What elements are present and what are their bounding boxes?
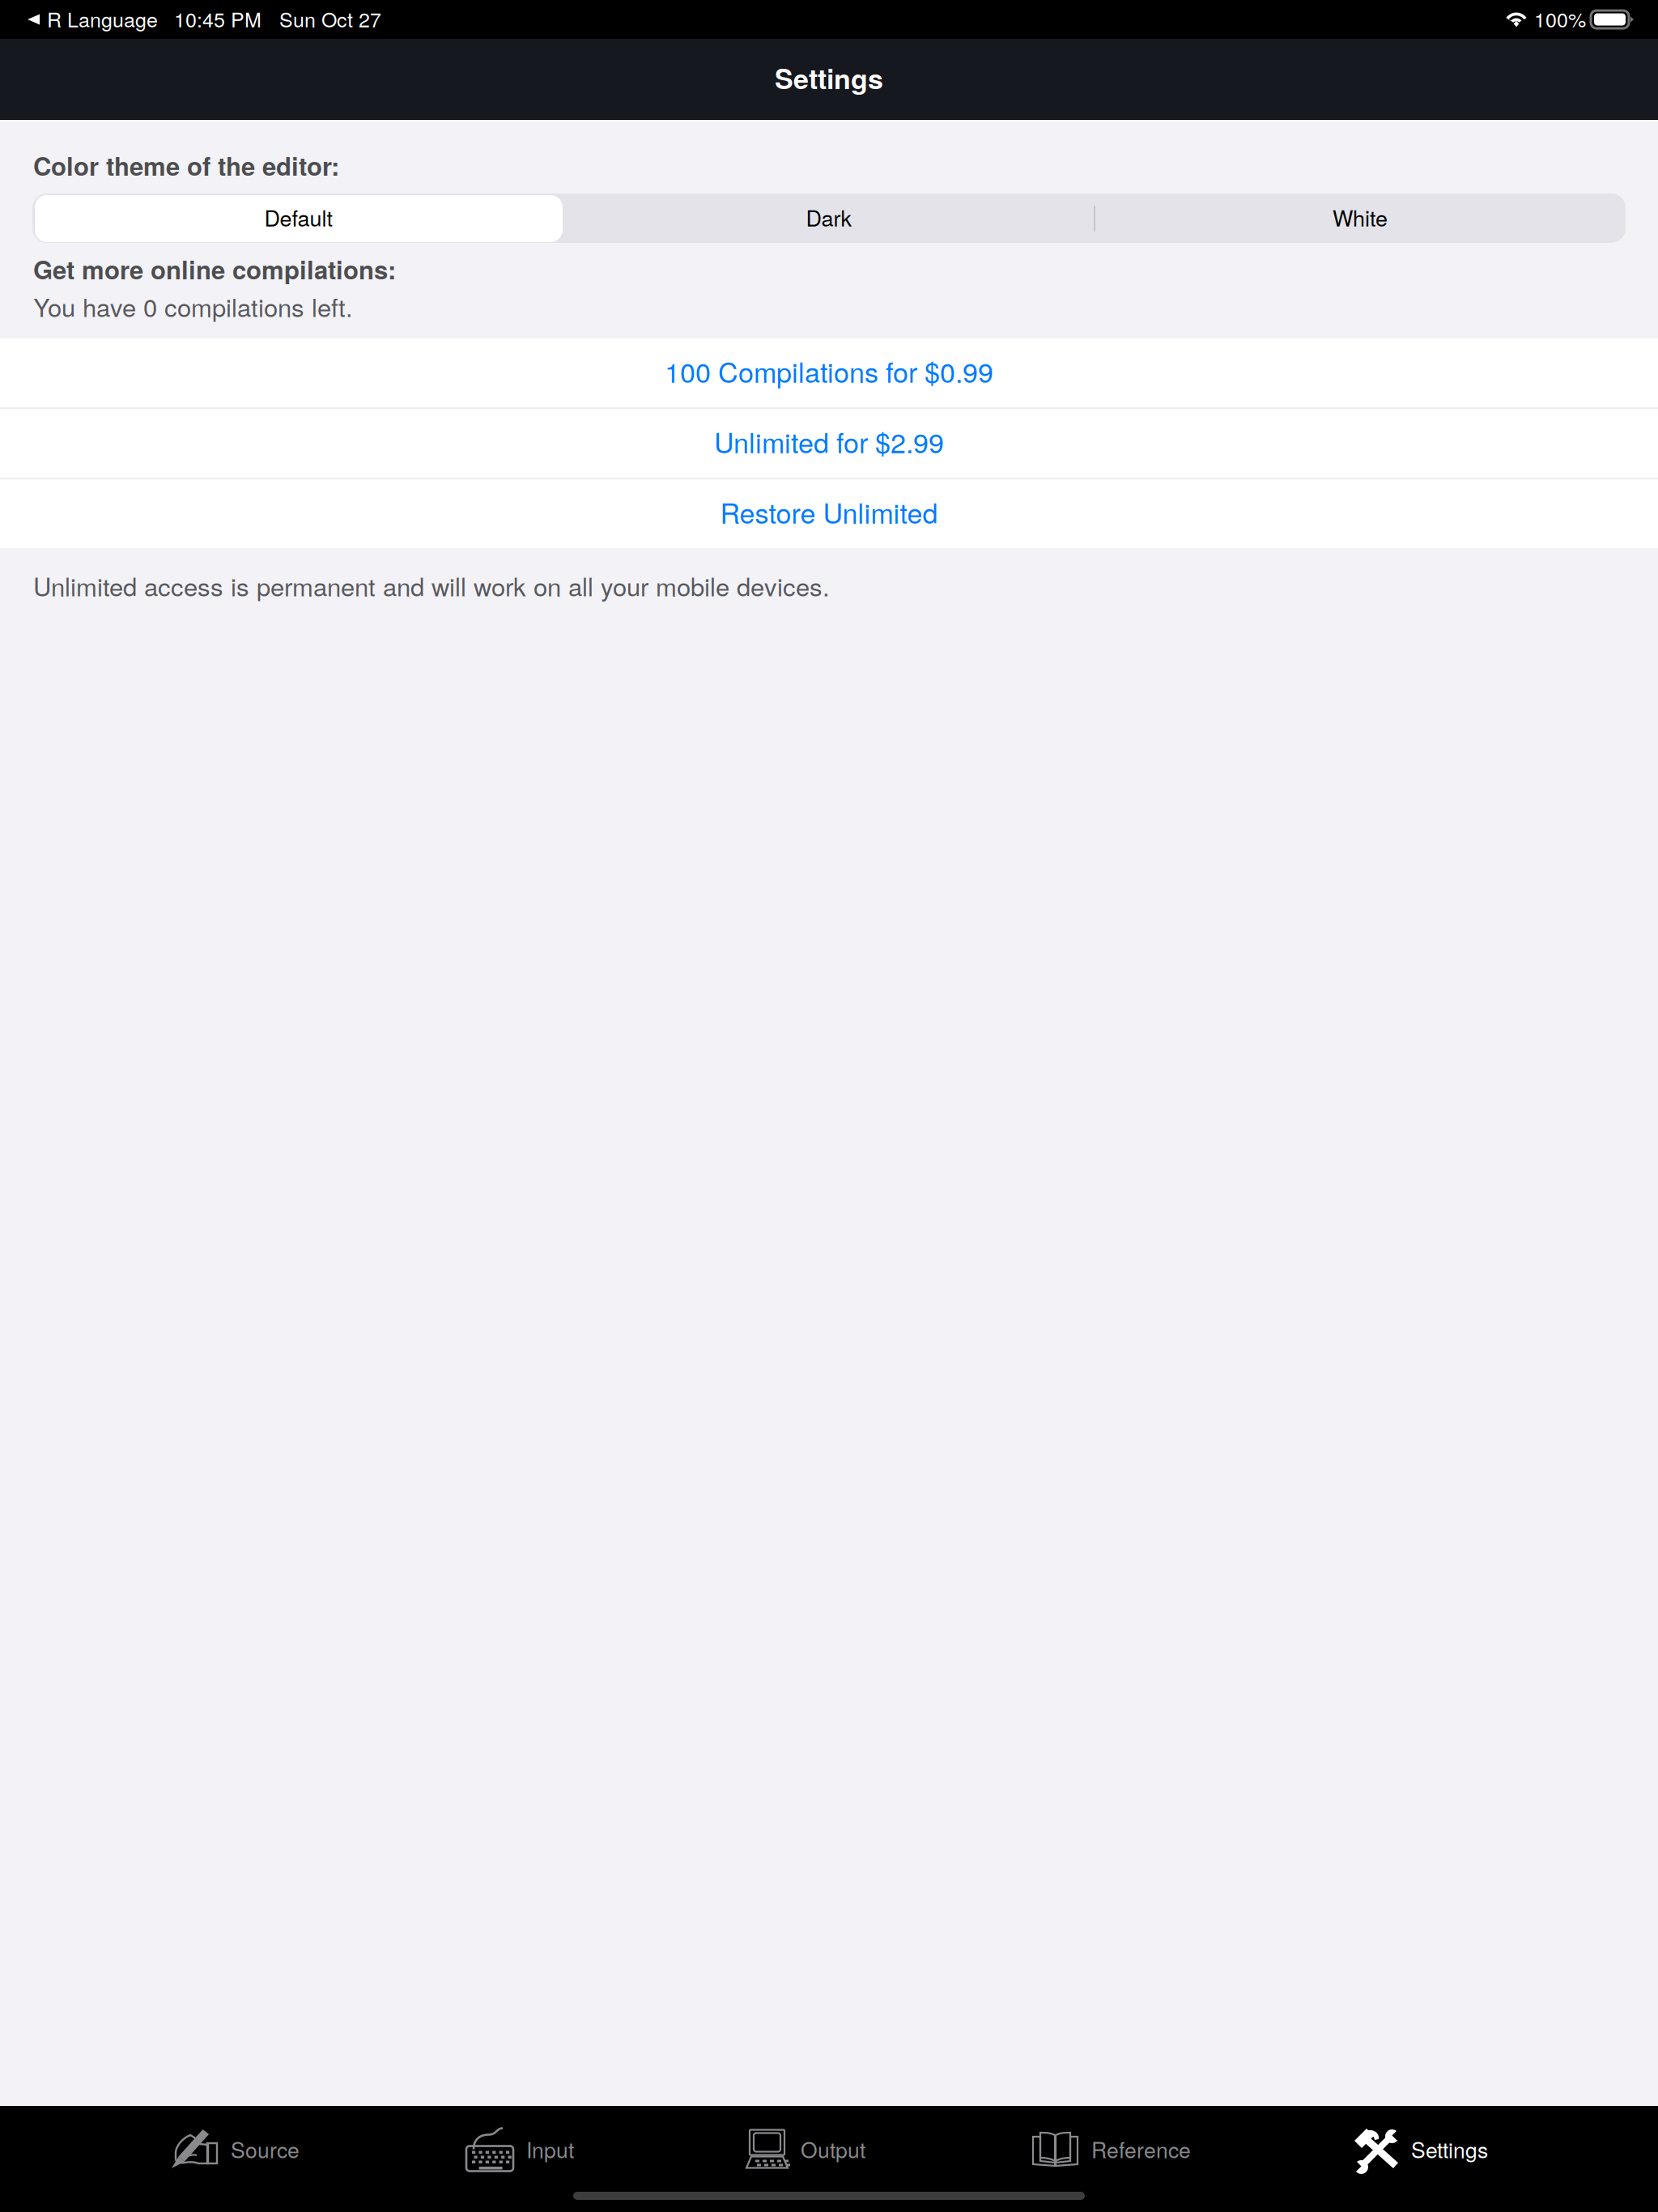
staticText: White: [1333, 201, 1388, 233]
button[interactable]: Unlimited for $2.99: [0, 409, 1658, 478]
button[interactable]: White: [1095, 195, 1626, 242]
button[interactable]: Output: [742, 2121, 865, 2177]
staticText: Dark: [806, 201, 852, 233]
button[interactable]: Settings: [1354, 2121, 1488, 2177]
staticText: R Language: [47, 4, 158, 33]
staticText: Source: [231, 2133, 300, 2164]
staticText: Settings: [775, 58, 883, 97]
staticText: You have 0 compilations left.: [33, 288, 353, 324]
button[interactable]: 100 Compilations for $0.99: [0, 338, 1658, 407]
button[interactable]: Source: [170, 2121, 300, 2177]
staticText: Get more online compilations:: [33, 251, 396, 287]
staticText: Sun Oct 27: [279, 4, 381, 33]
staticText: Color theme of the editor:: [33, 147, 339, 183]
button[interactable]: Reference: [1030, 2121, 1191, 2177]
staticText: 10:45 PM: [174, 4, 261, 33]
staticText: Output: [801, 2133, 865, 2164]
button[interactable]: Dark: [563, 195, 1095, 242]
button[interactable]: Default: [35, 195, 563, 242]
button[interactable]: Input: [466, 2121, 574, 2177]
staticText: Unlimited for $2.99: [714, 422, 944, 461]
staticText: Input: [526, 2133, 574, 2164]
staticText: 100 Compilations for $0.99: [665, 351, 993, 391]
staticText: Unlimited access is permanent and will w…: [33, 568, 830, 604]
staticText: Restore Unlimited: [720, 492, 938, 531]
staticText: 100%: [1534, 4, 1586, 33]
staticText: Reference: [1091, 2133, 1191, 2164]
staticText: Default: [264, 201, 333, 233]
button[interactable]: Restore Unlimited: [0, 479, 1658, 548]
staticText: Settings: [1411, 2133, 1488, 2164]
